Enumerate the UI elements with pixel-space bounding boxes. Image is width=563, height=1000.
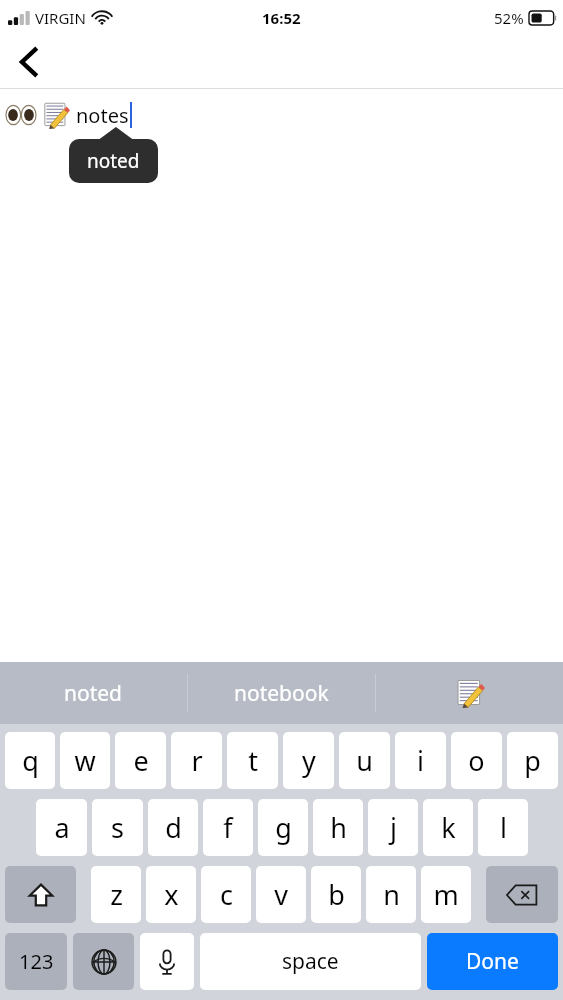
staticText: w [74, 742, 96, 779]
button[interactable]: u [339, 732, 390, 789]
staticText: noted [87, 148, 140, 174]
staticText: notes [76, 102, 129, 129]
button[interactable]: Shift [5, 866, 76, 923]
button[interactable]: z [91, 866, 141, 923]
button[interactable]: b [311, 866, 361, 923]
button[interactable]: j [368, 799, 418, 856]
staticText: k [441, 809, 456, 846]
button[interactable]: a [36, 799, 87, 856]
button[interactable]: t [227, 732, 278, 789]
button[interactable]: c [201, 866, 251, 923]
staticText: n [383, 876, 400, 913]
staticText: Done [466, 947, 519, 976]
button[interactable]: f [203, 799, 253, 856]
staticText: y [302, 742, 316, 779]
button[interactable]: noted [0, 662, 187, 724]
staticText: 123 [19, 948, 54, 975]
button[interactable]: space [200, 933, 421, 990]
staticText: f [223, 809, 233, 846]
staticText: d [165, 809, 182, 846]
button[interactable]: o [451, 732, 502, 789]
button[interactable]: l [478, 799, 528, 856]
staticText: a [54, 809, 70, 846]
staticText: 52% [494, 8, 524, 28]
button[interactable]: h [313, 799, 363, 856]
button[interactable]: w [60, 732, 110, 789]
staticText: VIRGIN [35, 8, 86, 28]
button[interactable]: Memo emoji suggestion [376, 662, 563, 724]
button[interactable]: Dictation [140, 933, 194, 990]
staticText: b [328, 876, 345, 913]
button[interactable]: e [115, 732, 166, 789]
button[interactable]: Back [6, 39, 52, 85]
staticText: 16:52 [262, 8, 301, 28]
staticText: u [356, 742, 373, 779]
staticText: g [275, 809, 292, 846]
button[interactable]: Change keyboard language [73, 933, 134, 990]
button[interactable]: p [507, 732, 558, 789]
staticText: m [433, 876, 459, 913]
button[interactable]: x [146, 866, 196, 923]
button[interactable]: q [5, 732, 55, 789]
staticText: l [500, 809, 507, 846]
staticText: r [191, 742, 203, 779]
staticText: x [164, 876, 179, 913]
staticText: q [22, 742, 39, 779]
button[interactable]: Done [427, 933, 558, 990]
button[interactable]: Backspace [486, 866, 558, 923]
button[interactable]: m [421, 866, 471, 923]
button[interactable]: g [258, 799, 308, 856]
staticText: v [274, 876, 288, 913]
staticText: j [390, 809, 397, 846]
button[interactable]: k [423, 799, 473, 856]
staticText: notebook [234, 679, 329, 708]
staticText: h [330, 809, 347, 846]
button[interactable]: 123 [5, 933, 67, 990]
staticText: s [111, 809, 124, 846]
staticText: noted [64, 679, 123, 708]
button[interactable]: n [366, 866, 416, 923]
staticText: i [417, 742, 424, 779]
button[interactable]: y [283, 732, 334, 789]
button[interactable]: i [395, 732, 446, 789]
staticText: c [220, 876, 233, 913]
staticText: p [524, 742, 541, 779]
button[interactable]: notebook [188, 662, 375, 724]
staticText: e [133, 742, 149, 779]
staticText: space [282, 947, 339, 976]
button[interactable]: r [171, 732, 222, 789]
button[interactable]: noted [69, 139, 158, 183]
button[interactable]: v [256, 866, 306, 923]
staticText: t [248, 742, 258, 779]
staticText: o [468, 742, 485, 779]
button[interactable]: s [92, 799, 143, 856]
staticText: z [110, 876, 123, 913]
button[interactable]: d [148, 799, 198, 856]
